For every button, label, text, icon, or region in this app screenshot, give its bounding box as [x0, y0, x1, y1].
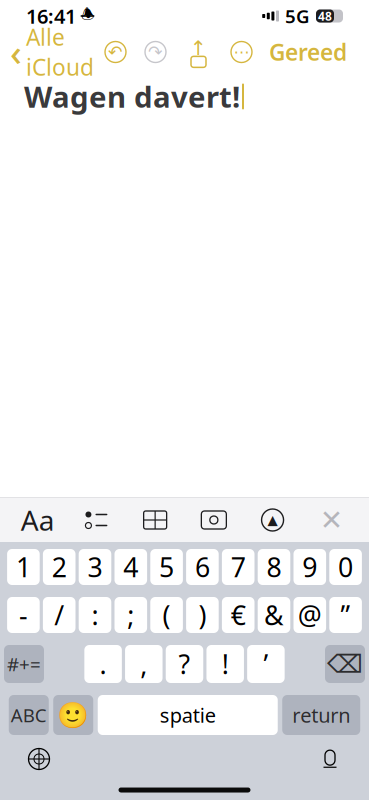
button[interactable]: ‹ — [10, 17, 94, 87]
button[interactable]: & — [258, 597, 290, 633]
button[interactable]: : — [79, 597, 111, 633]
staticText: : — [91, 597, 98, 633]
staticText: ” — [341, 597, 351, 633]
staticText: ⌫ — [327, 650, 363, 678]
button[interactable]: ? — [166, 645, 203, 683]
button[interactable]: , — [125, 645, 162, 683]
staticText: , — [140, 646, 147, 682]
staticText: 5 — [159, 549, 174, 585]
button[interactable]: ABC — [9, 695, 49, 735]
button[interactable]: #+= — [4, 645, 44, 683]
button[interactable]: spatie — [98, 695, 278, 735]
staticText: 9 — [302, 549, 317, 585]
staticText: 3 — [87, 549, 102, 585]
button[interactable]: Hide keyboard — [310, 499, 352, 541]
staticText: . — [100, 646, 107, 682]
button[interactable]: Camera — [193, 499, 235, 541]
staticText: 6 — [195, 549, 210, 585]
staticText: ? — [178, 646, 190, 682]
staticText: ↑ — [190, 37, 207, 59]
button[interactable]: Emoji — [53, 695, 93, 735]
staticText: #+= — [7, 652, 41, 676]
button[interactable]: Checklist — [75, 499, 117, 541]
staticText: ! — [222, 646, 229, 682]
staticText: - — [19, 597, 28, 633]
button[interactable]: @ — [293, 597, 326, 633]
button[interactable]: 2 — [43, 549, 75, 585]
staticText: € — [231, 597, 246, 633]
button[interactable]: More options — [231, 36, 252, 67]
button[interactable]: ” — [329, 597, 362, 633]
button[interactable]: ( — [150, 597, 183, 633]
staticText: return — [292, 702, 350, 728]
staticText: Aa — [21, 501, 55, 539]
button[interactable]: . — [84, 645, 122, 683]
button[interactable]: 0 — [329, 549, 362, 585]
staticText: ⋯ — [233, 43, 249, 61]
button[interactable]: return — [282, 695, 360, 735]
staticText: 8 — [266, 549, 281, 585]
button[interactable]: 6 — [186, 549, 219, 585]
button[interactable]: Redo — [126, 36, 166, 67]
staticText: Wagen davert! — [24, 77, 240, 116]
button[interactable]: Markup — [252, 499, 294, 541]
button[interactable]: Gereed — [252, 32, 347, 72]
button[interactable]: 3 — [79, 549, 111, 585]
staticText: ▲ — [268, 512, 278, 527]
button[interactable]: Switch keyboard — [18, 738, 60, 780]
button[interactable]: ! — [206, 645, 244, 683]
button[interactable]: ’ — [247, 645, 285, 683]
button[interactable]: Text formatting — [17, 499, 59, 541]
staticText: Gereed — [269, 37, 347, 67]
button[interactable]: € — [222, 597, 254, 633]
staticText: ‹ — [10, 28, 22, 76]
staticText: ✕ — [320, 504, 343, 536]
button[interactable]: 1 — [7, 549, 40, 585]
staticText: 5G — [285, 4, 310, 28]
staticText: ABC — [11, 703, 47, 727]
staticText: 48 — [318, 8, 332, 24]
staticText: 2 — [52, 549, 67, 585]
staticText: ) — [198, 597, 206, 633]
staticText: spatie — [160, 702, 216, 728]
staticText: @ — [298, 597, 322, 633]
button[interactable]: Dictation — [309, 738, 351, 780]
button[interactable]: 4 — [114, 549, 147, 585]
staticText: 0 — [338, 549, 353, 585]
staticText: ↷ — [148, 42, 163, 62]
button[interactable]: Undo — [94, 36, 126, 67]
button[interactable]: ; — [114, 597, 147, 633]
button[interactable]: 8 — [258, 549, 290, 585]
button[interactable]: Delete — [325, 645, 365, 683]
button[interactable]: Table — [134, 499, 176, 541]
staticText: 1 — [16, 549, 31, 585]
button[interactable]: ) — [186, 597, 219, 633]
button[interactable]: Share — [187, 35, 209, 68]
button[interactable]: 9 — [293, 549, 326, 585]
staticText: 7 — [231, 549, 246, 585]
staticText: Alle iCloud — [26, 22, 94, 82]
staticText: ↶ — [108, 42, 123, 62]
staticText: 4 — [123, 549, 138, 585]
staticText: 🙂 — [57, 700, 89, 729]
staticText: / — [54, 597, 64, 633]
staticText: ’ — [263, 646, 268, 682]
staticText: 16:41 — [26, 3, 76, 29]
staticText: ( — [163, 597, 171, 633]
button[interactable]: 7 — [222, 549, 254, 585]
staticText: ; — [127, 597, 134, 633]
staticText: & — [264, 597, 284, 633]
button[interactable]: - — [7, 597, 40, 633]
staticText: 🕭 — [81, 4, 94, 28]
button[interactable]: 5 — [150, 549, 183, 585]
button[interactable]: / — [43, 597, 75, 633]
